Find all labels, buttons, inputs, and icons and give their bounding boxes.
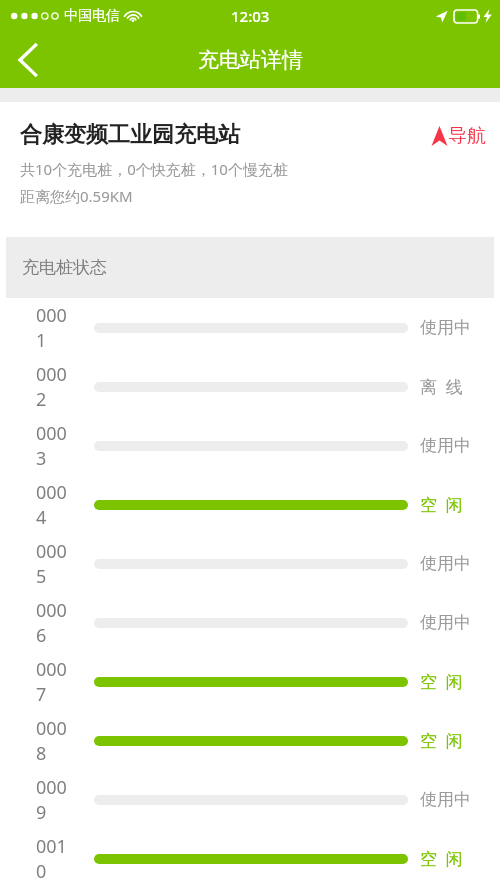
staticText: 使用中	[420, 612, 471, 633]
button[interactable]: 0007	[0, 652, 500, 711]
staticText: 0009	[36, 775, 74, 825]
staticText: 中国电信	[64, 7, 120, 25]
staticText: 0007	[36, 657, 74, 707]
staticText: 充电站详情	[198, 47, 303, 73]
staticText: 使用中	[420, 317, 471, 338]
staticText: 0008	[36, 716, 74, 766]
button[interactable]: 0003	[0, 416, 500, 475]
staticText: 0004	[36, 480, 74, 530]
staticText: 0006	[36, 598, 74, 648]
staticText: 使用中	[420, 789, 471, 810]
staticText: 距离您约0.59KM	[20, 186, 133, 206]
button[interactable]: 0001	[0, 298, 500, 357]
staticText: 空 闲	[420, 493, 463, 516]
button[interactable]: 0010	[0, 829, 500, 888]
staticText: 0002	[36, 362, 74, 412]
button[interactable]: 0004	[0, 475, 500, 534]
button[interactable]: 导航	[431, 124, 486, 148]
staticText: 12:03	[231, 6, 270, 26]
staticText: 0003	[36, 421, 74, 471]
staticText: 空 闲	[420, 670, 463, 693]
staticText: 0005	[36, 539, 74, 589]
staticText: 离 线	[420, 375, 463, 398]
staticText: 合康变频工业园充电站	[20, 121, 240, 149]
staticText: 空 闲	[420, 729, 463, 752]
button[interactable]: Back	[0, 32, 56, 88]
staticText: 0010	[36, 834, 74, 884]
staticText: 空 闲	[420, 847, 463, 870]
button[interactable]: 0006	[0, 593, 500, 652]
staticText: 使用中	[420, 553, 471, 574]
button[interactable]: 0005	[0, 534, 500, 593]
button[interactable]: 0002	[0, 357, 500, 416]
staticText: 共10个充电桩，0个快充桩，10个慢充桩	[20, 159, 288, 179]
staticText: 使用中	[420, 435, 471, 456]
button[interactable]: 0008	[0, 711, 500, 770]
staticText: 导航	[448, 124, 486, 148]
staticText: 充电桩状态	[22, 257, 107, 278]
staticText: 0001	[36, 303, 74, 353]
button[interactable]: 0009	[0, 770, 500, 829]
